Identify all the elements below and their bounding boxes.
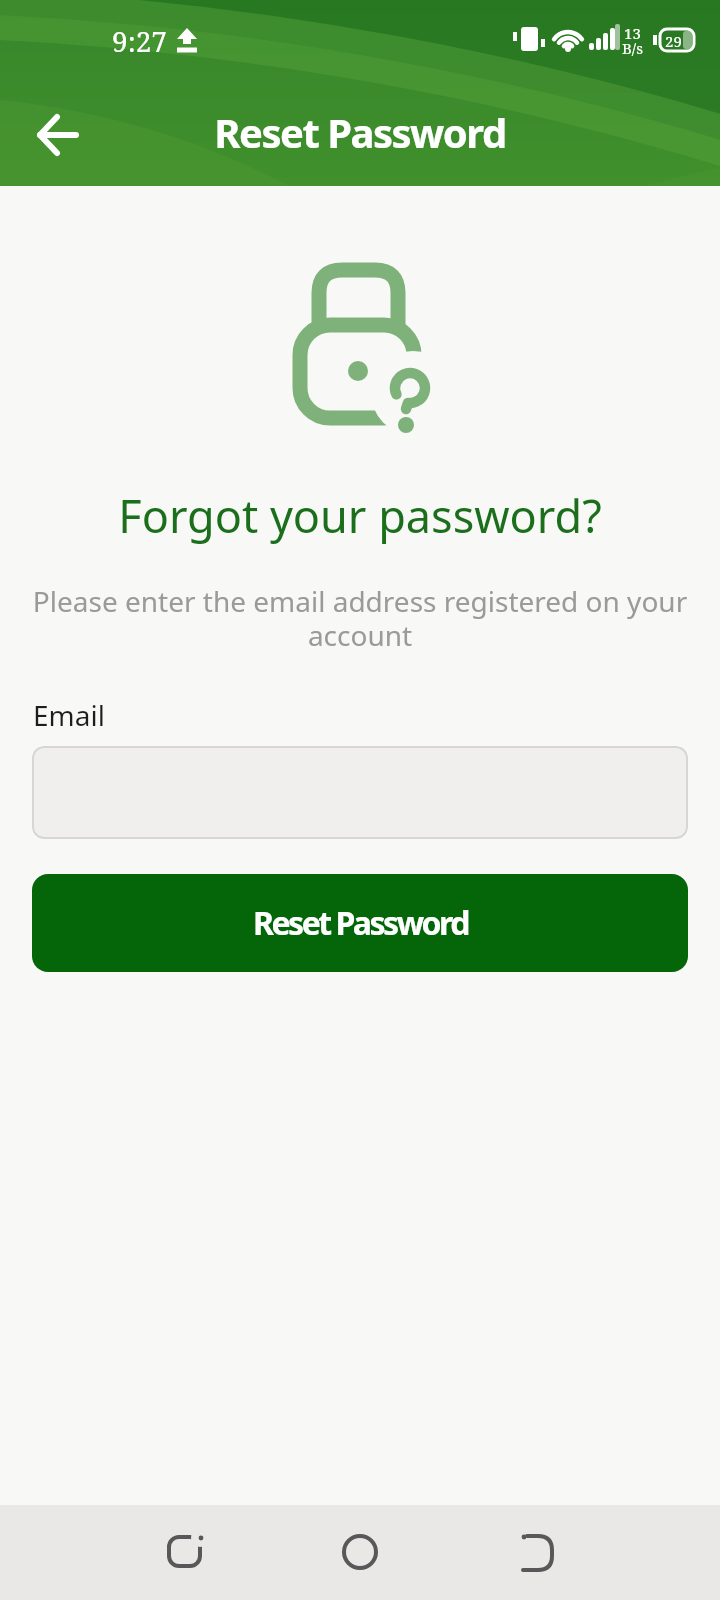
staticText: Forgot your password? [0,485,720,546]
staticText: Reset Password [253,901,468,945]
button[interactable] [507,1531,563,1575]
staticText: Please enter the email address registere… [0,582,720,654]
staticText: 29 [665,31,682,51]
button[interactable]: Reset Password [32,874,688,972]
button[interactable] [32,746,688,839]
staticText: Reset Password [0,105,720,159]
button[interactable] [156,1531,212,1575]
staticText: Email [33,696,105,734]
button[interactable] [332,1531,388,1575]
staticText: 9:27 [112,22,167,60]
staticText: 13 [624,23,641,43]
button[interactable] [18,103,92,167]
staticText: B/s [622,38,643,58]
